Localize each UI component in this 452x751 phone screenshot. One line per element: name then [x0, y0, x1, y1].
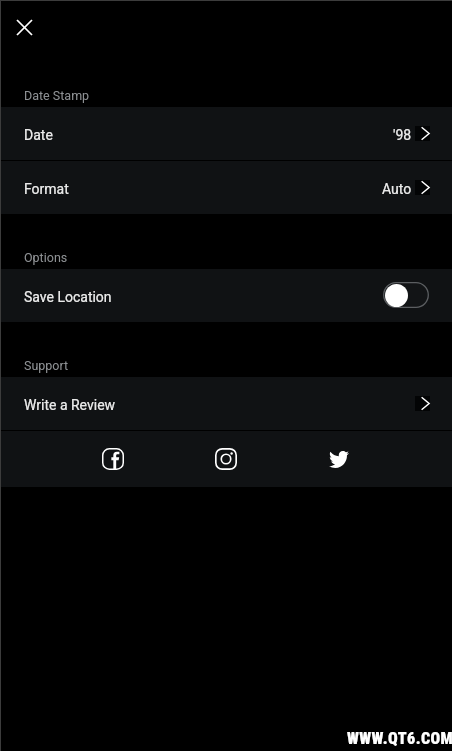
button[interactable]: Instagram — [206, 439, 246, 479]
button[interactable]: Save Location — [0, 269, 452, 322]
staticText: Write a Review — [24, 397, 116, 413]
staticText: Auto — [382, 181, 412, 197]
button[interactable]: Close — [4, 7, 44, 47]
staticText: Support — [24, 358, 69, 373]
button[interactable]: Date — [0, 107, 452, 160]
staticText: Date Stamp — [24, 88, 90, 103]
button[interactable]: Twitter — [319, 439, 359, 479]
staticText: WWW.QT6.COM — [347, 729, 452, 748]
staticText: Options — [24, 250, 68, 265]
button[interactable]: Write a Review — [0, 377, 452, 430]
staticText: Date — [24, 127, 53, 143]
button[interactable]: Facebook — [93, 439, 133, 479]
button[interactable]: Format — [0, 161, 452, 214]
staticText: '98 — [393, 127, 412, 143]
staticText: Save Location — [24, 289, 112, 305]
staticText: Format — [24, 181, 69, 197]
